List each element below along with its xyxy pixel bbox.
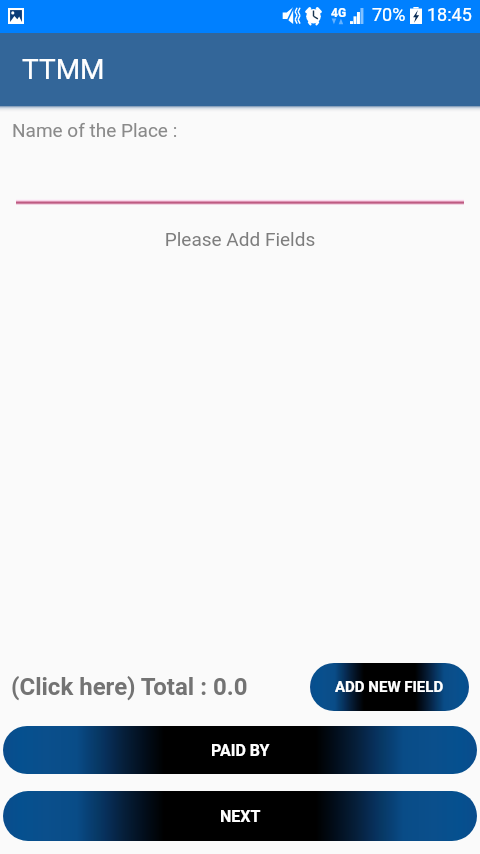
other: Screenshot captured <box>8 8 24 24</box>
other: Alarm set <box>304 6 323 25</box>
staticText: PAID BY <box>211 741 270 760</box>
other: Sound off <box>281 7 302 24</box>
button[interactable]: NEXT <box>3 791 477 841</box>
staticText: Name of the Place : <box>12 119 178 141</box>
staticText: Please Add Fields <box>0 228 480 250</box>
staticText: 4G <box>331 6 347 20</box>
staticText: TTMM <box>22 53 105 86</box>
button[interactable]: PAID BY <box>3 726 477 774</box>
staticText: ADD NEW FIELD <box>335 678 444 696</box>
staticText: NEXT <box>220 807 261 826</box>
button[interactable]: ADD NEW FIELD <box>310 663 469 711</box>
staticText: 18:45 <box>427 4 472 25</box>
staticText: 70% <box>372 4 406 25</box>
button[interactable]: (Click here) Total : 0.0 <box>11 673 248 701</box>
